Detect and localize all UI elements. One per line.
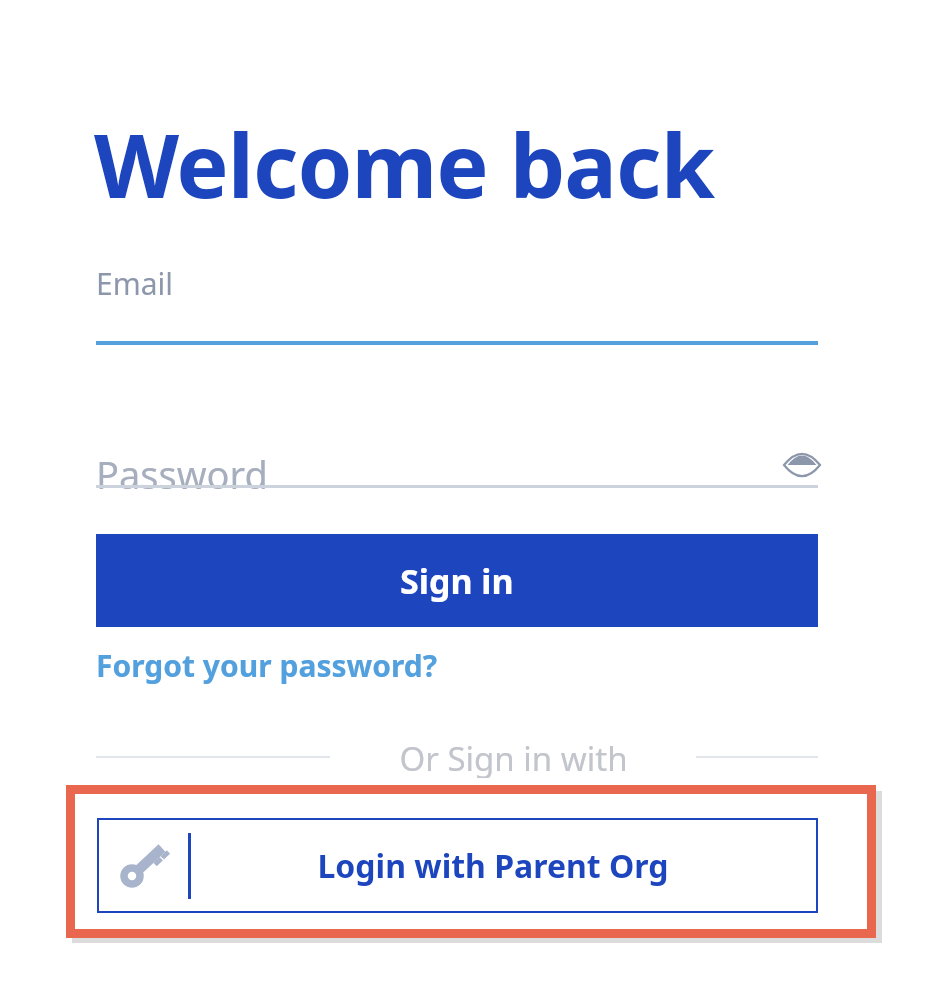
- button[interactable]: Forgot your password?: [96, 645, 438, 686]
- button[interactable]: Show password: [779, 442, 825, 488]
- staticText: Email: [96, 263, 174, 304]
- staticText: Sign in: [400, 558, 514, 604]
- button[interactable]: Login with Parent Org: [97, 818, 818, 913]
- staticText: Password: [96, 448, 268, 500]
- staticText: Forgot your password?: [96, 645, 438, 686]
- button[interactable]: Sign in: [96, 534, 818, 627]
- staticText: Welcome back: [94, 104, 715, 224]
- staticText: Login with Parent Org: [317, 844, 669, 888]
- staticText: Or Sign in with: [399, 736, 628, 778]
